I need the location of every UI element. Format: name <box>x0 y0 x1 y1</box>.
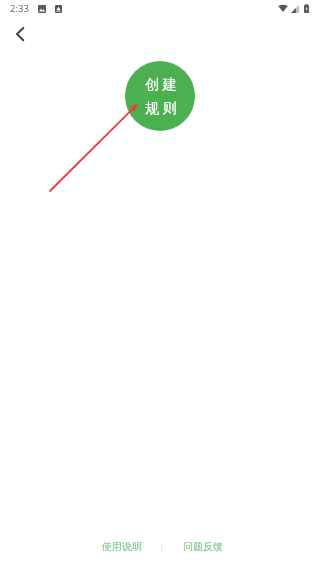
staticText: 问题反馈 <box>183 540 223 553</box>
staticText: 2:33 <box>10 2 29 15</box>
button[interactable]: 问题反馈 <box>162 535 232 558</box>
button[interactable]: 创建 规则 <box>125 61 195 131</box>
staticText: 使用说明 <box>102 540 142 553</box>
button[interactable]: 使用说明 <box>89 535 161 558</box>
button[interactable]: Back <box>0 14 39 54</box>
staticText: 创建 规则 <box>145 75 180 117</box>
